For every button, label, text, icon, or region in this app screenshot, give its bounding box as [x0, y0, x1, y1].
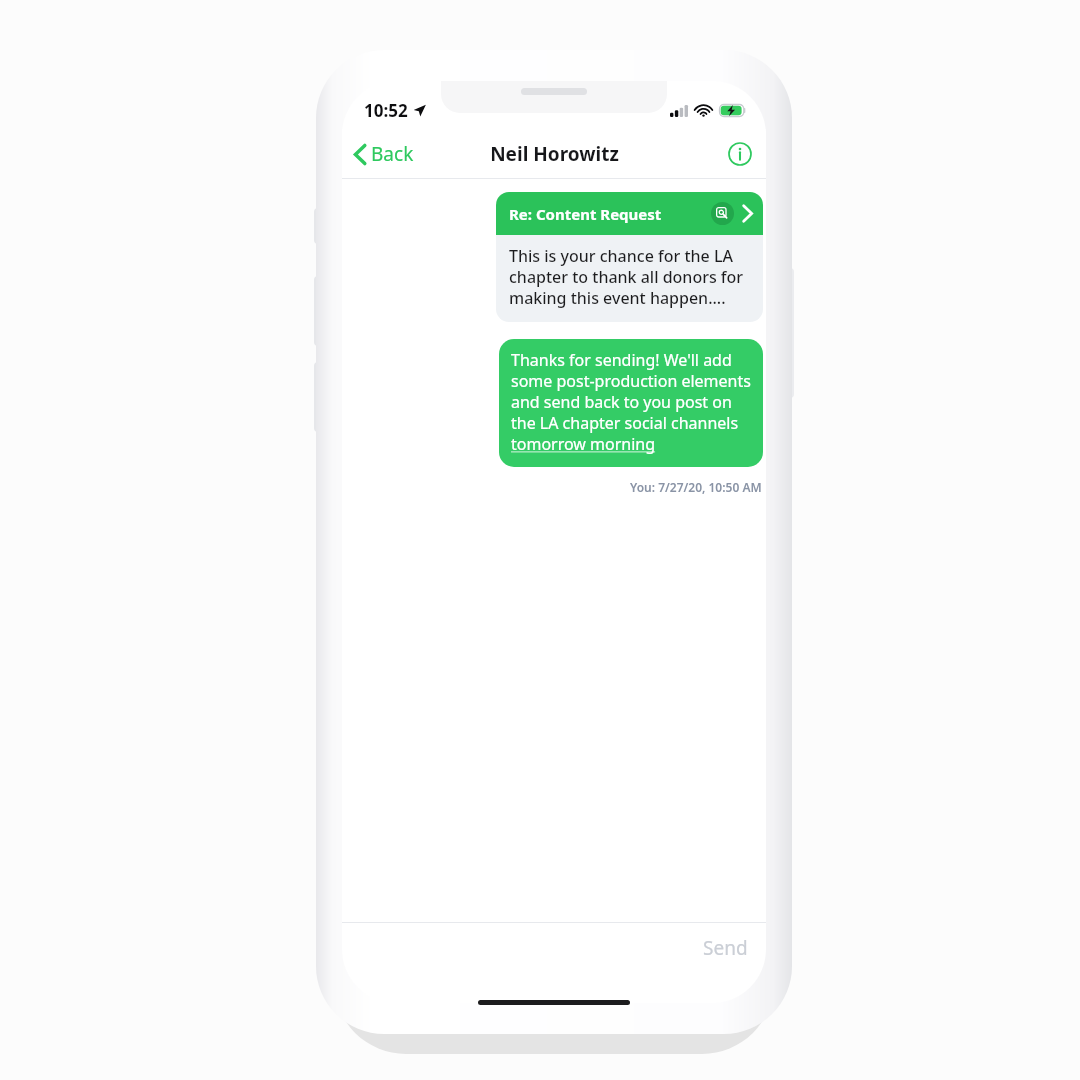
staticText: 10:52 [364, 99, 408, 122]
staticText: Re: Content Request [509, 204, 711, 224]
button[interactable]: Back [342, 133, 426, 175]
button[interactable]: Conversation info [714, 132, 766, 176]
button[interactable]: Thanks for sending! We'll add some post-… [499, 339, 763, 467]
staticText: Neil Horowitz [490, 141, 619, 167]
button[interactable]: Re: Content Request [496, 192, 763, 322]
staticText: You: 7/27/20, 10:50 AM [630, 479, 762, 495]
staticText: Send [703, 935, 748, 961]
staticText: This is your chance for the LA chapter t… [509, 245, 750, 309]
staticText: Back [371, 141, 414, 167]
staticText: Thanks for sending! We'll add some post-… [511, 349, 752, 455]
other: Preview message [711, 202, 734, 225]
button[interactable]: Send [685, 923, 766, 973]
